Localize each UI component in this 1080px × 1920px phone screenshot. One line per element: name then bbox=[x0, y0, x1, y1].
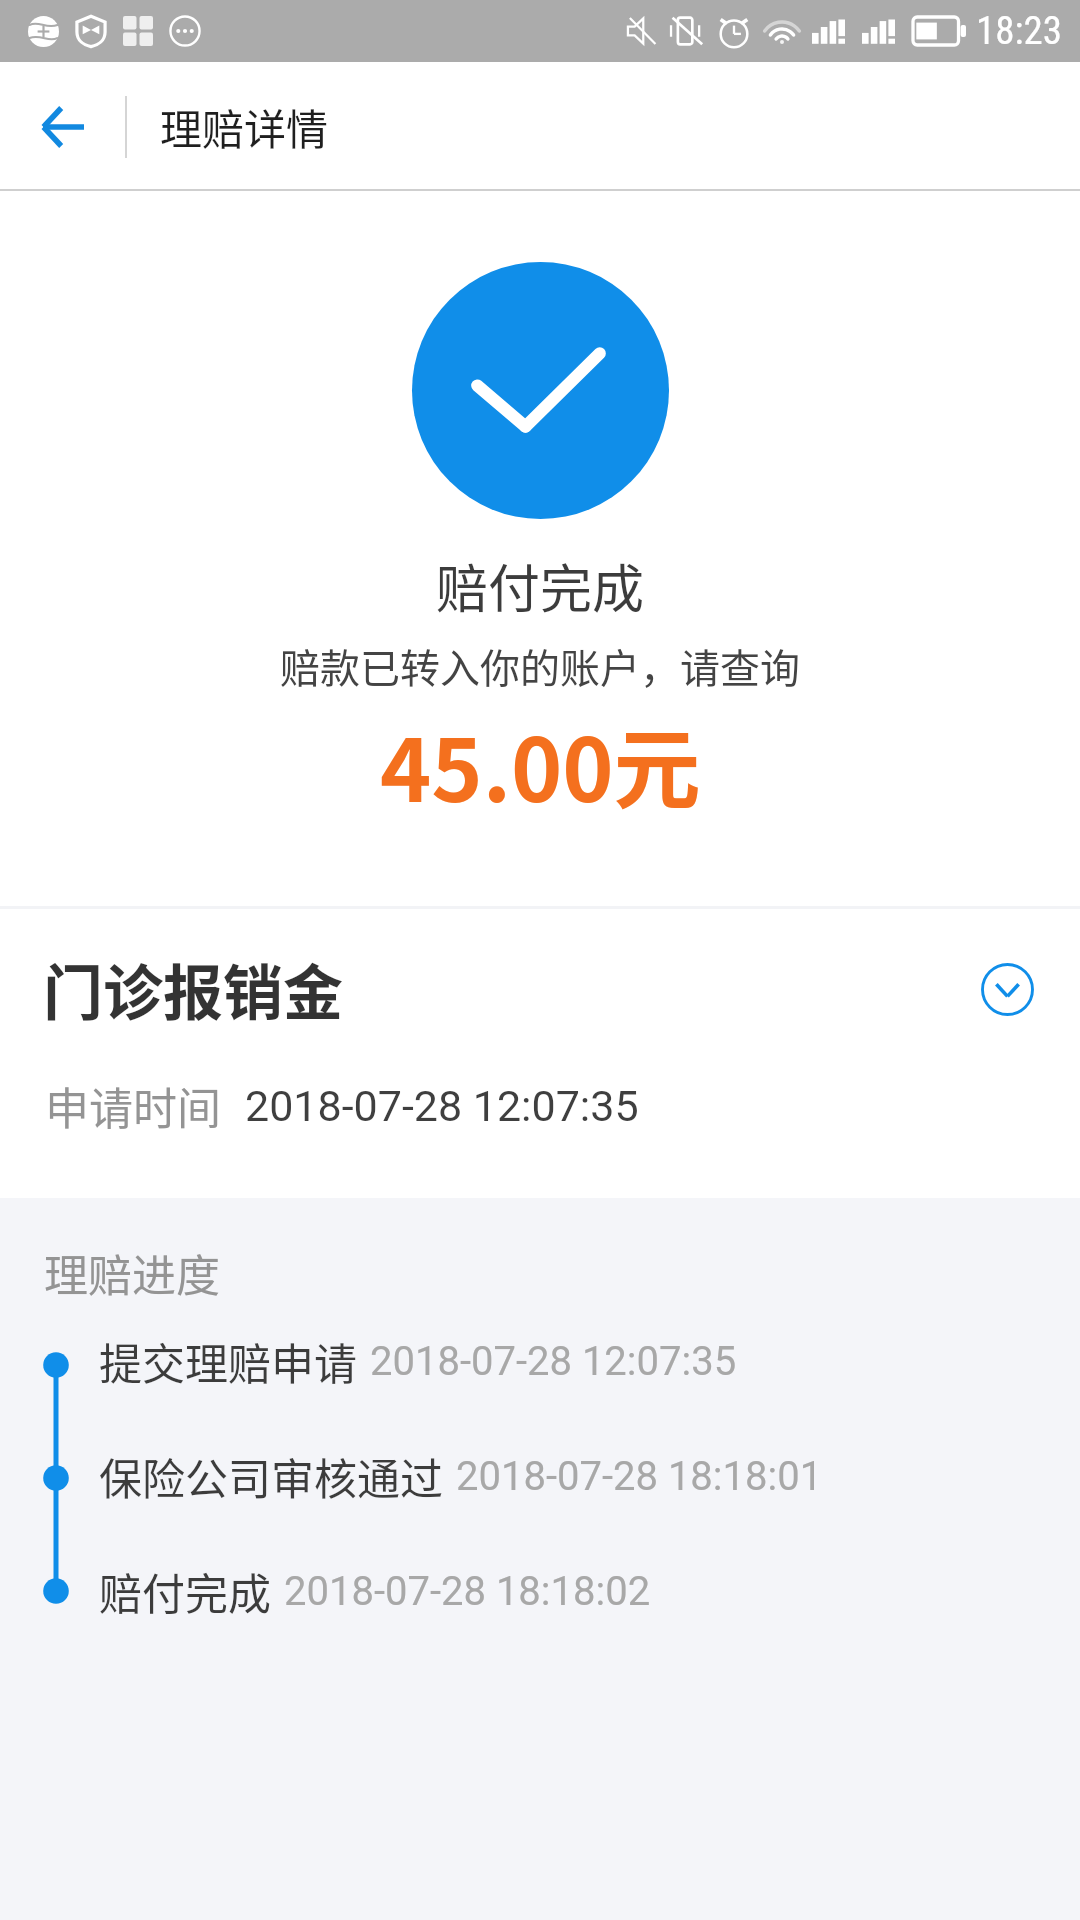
staticText: 门诊报销金 bbox=[43, 945, 343, 1032]
staticText: 45.00元 bbox=[380, 701, 701, 827]
staticText: 2018-07-28 18:18:01 bbox=[456, 1453, 823, 1500]
button[interactable]: Back bbox=[0, 62, 125, 191]
staticText: 申请时间 bbox=[45, 1074, 221, 1138]
button[interactable]: Expand details bbox=[974, 956, 1040, 1022]
staticText: 保险公司审核通过 bbox=[99, 1445, 443, 1507]
staticText: 赔付完成 bbox=[99, 1560, 271, 1622]
staticText: 赔款已转入你的账户，请查询 bbox=[280, 637, 800, 695]
staticText: 2018-07-28 12:07:35 bbox=[370, 1338, 737, 1385]
staticText: 2018-07-28 12:07:35 bbox=[245, 1081, 639, 1131]
button[interactable]: 门诊报销金 bbox=[0, 945, 1080, 1032]
staticText: 2018-07-28 18:18:02 bbox=[284, 1568, 651, 1615]
staticText: 赔付完成 bbox=[436, 548, 645, 623]
staticText: 18:23 bbox=[976, 8, 1063, 54]
staticText: 提交理赔申请 bbox=[99, 1330, 357, 1392]
staticText: 理赔详情 bbox=[160, 96, 329, 157]
staticText: 理赔进度 bbox=[44, 1241, 220, 1305]
